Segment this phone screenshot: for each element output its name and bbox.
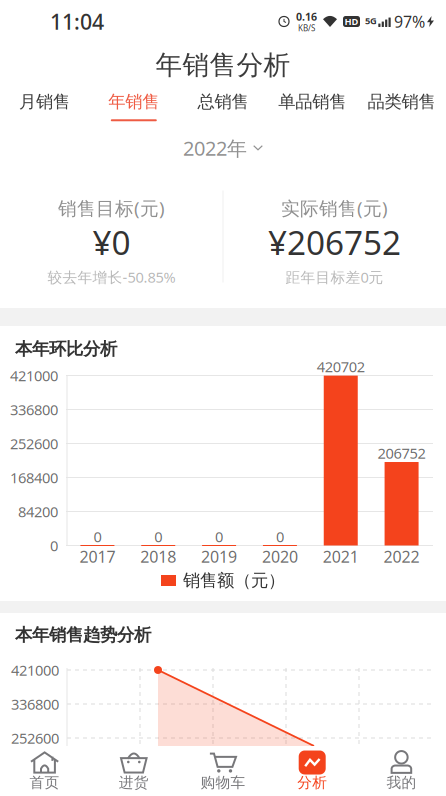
staticText: 2021	[323, 546, 359, 567]
staticText: 销售额（元）	[183, 570, 285, 591]
staticText: 421000	[10, 366, 58, 385]
button[interactable]: 进货	[89, 746, 178, 796]
staticText: 首页	[30, 773, 60, 791]
button[interactable]: 2022年	[0, 131, 446, 165]
button[interactable]: 首页	[0, 746, 89, 796]
button[interactable]: 月销售	[0, 87, 89, 131]
staticText: 421000	[11, 660, 59, 680]
staticText: 0	[93, 527, 101, 546]
button[interactable]: 品类销售	[357, 87, 446, 131]
staticText: 168400	[10, 468, 58, 487]
button[interactable]: 分析	[268, 746, 357, 796]
staticText: 84200	[18, 502, 58, 521]
staticText: 距年目标差0元	[285, 267, 383, 287]
staticText: 2018	[140, 546, 176, 567]
staticText: 11:04	[50, 7, 104, 36]
staticText: 品类销售	[367, 91, 435, 112]
staticText: HD	[344, 15, 358, 28]
staticText: 97%	[394, 11, 425, 32]
staticText: 0	[215, 527, 223, 546]
staticText: 0	[50, 536, 58, 555]
staticText: 336800	[10, 400, 58, 419]
staticText: 单品销售	[278, 91, 346, 112]
staticText: ¥0	[92, 220, 130, 264]
staticText: 5G	[365, 14, 377, 27]
staticText: 我的	[386, 773, 416, 791]
staticText: 年销售	[108, 91, 159, 112]
staticText: 252600	[10, 434, 58, 453]
staticText: ¥206752	[268, 220, 401, 264]
staticText: 较去年增长-50.85%	[47, 267, 175, 287]
button[interactable]: 购物车	[178, 746, 268, 796]
staticText: 总销售	[197, 91, 248, 112]
staticText: 336800	[11, 694, 59, 714]
staticText: 年销售分析	[155, 49, 290, 81]
staticText: 2022年	[183, 135, 247, 161]
staticText: 0	[276, 527, 284, 546]
button[interactable]: 年销售	[89, 87, 178, 131]
staticText: 实际销售(元)	[281, 196, 388, 220]
staticText: 2017	[79, 546, 115, 567]
staticText: KB/S	[298, 23, 315, 33]
staticText: 2019	[201, 546, 237, 567]
staticText: 本年销售趋势分析	[15, 624, 151, 646]
staticText: 购物车	[200, 773, 245, 791]
staticText: 206752	[378, 443, 426, 463]
button[interactable]: 我的	[357, 746, 446, 796]
staticText: 本年环比分析	[15, 338, 117, 360]
staticText: 252600	[11, 728, 59, 748]
staticText: 0	[154, 527, 162, 546]
button[interactable]: 单品销售	[268, 87, 357, 131]
staticText: 进货	[119, 773, 149, 791]
staticText: 420702	[317, 357, 365, 376]
staticText: 销售目标(元)	[58, 196, 165, 220]
staticText: 2020	[262, 546, 298, 567]
staticText: 分析	[297, 773, 327, 791]
staticText: 月销售	[19, 91, 70, 112]
staticText: 0.16	[296, 10, 317, 24]
button[interactable]: 总销售	[178, 87, 268, 131]
staticText: 2022	[384, 546, 420, 567]
